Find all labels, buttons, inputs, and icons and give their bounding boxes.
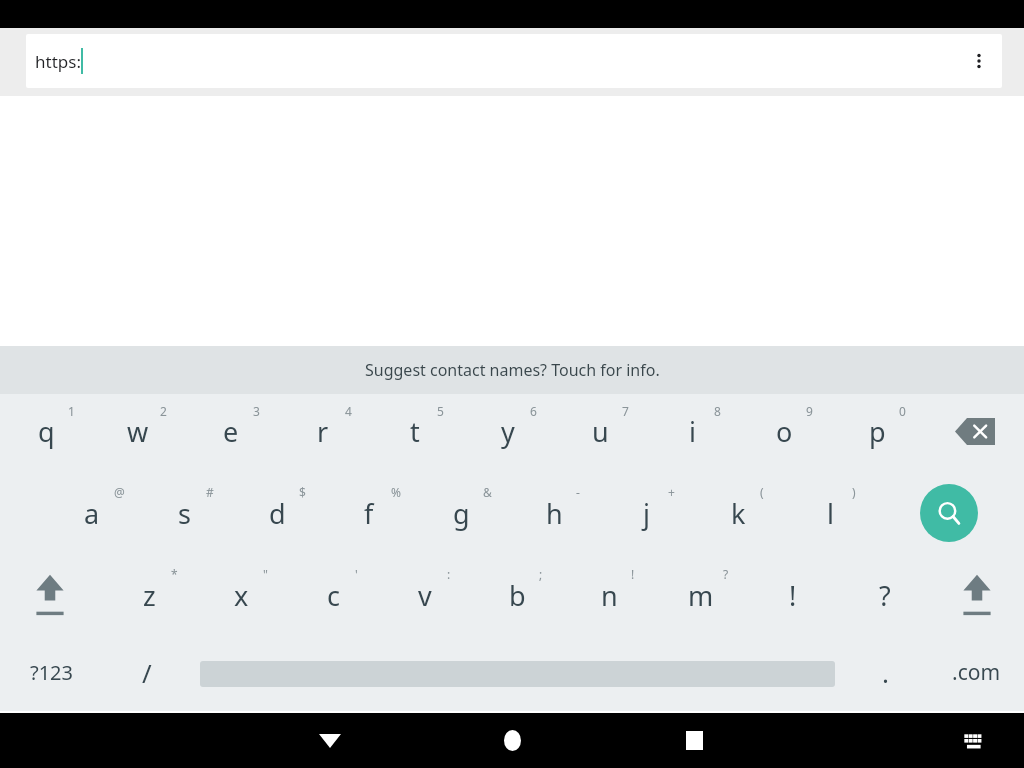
button[interactable]: w <box>92 398 184 464</box>
staticText: . <box>882 655 889 690</box>
staticText: j <box>643 495 650 532</box>
staticText: v <box>418 577 432 614</box>
staticText: z <box>143 577 156 614</box>
button[interactable]: o <box>738 398 830 464</box>
button[interactable]: z <box>103 562 195 628</box>
staticText: f <box>364 495 374 532</box>
button[interactable]: ? <box>839 562 931 628</box>
button[interactable]: / <box>110 644 184 700</box>
button[interactable]: b <box>471 562 563 628</box>
button[interactable]: Search <box>920 484 978 542</box>
button[interactable]: . <box>850 644 920 700</box>
button[interactable]: j <box>600 480 692 546</box>
staticText: Suggest contact names? Touch for info. <box>365 359 660 381</box>
staticText: a <box>84 495 100 532</box>
button[interactable]: x <box>195 562 287 628</box>
staticText: ! <box>789 577 797 614</box>
staticText: @ <box>114 484 125 500</box>
staticText: 0 <box>899 403 906 419</box>
staticText: x <box>234 577 249 614</box>
button[interactable]: r <box>277 398 369 464</box>
staticText: b <box>509 577 526 614</box>
staticText: 8 <box>714 403 721 419</box>
button[interactable]: f <box>323 480 415 546</box>
staticText: r <box>317 413 329 450</box>
staticText: 6 <box>530 403 537 419</box>
staticText: ? <box>723 566 729 582</box>
staticText: ! <box>631 566 635 582</box>
button[interactable]: ! <box>747 562 839 628</box>
staticText: 2 <box>160 403 167 419</box>
staticText: s <box>178 495 191 532</box>
button[interactable]: Shift <box>10 562 90 628</box>
staticText: e <box>223 413 239 450</box>
button[interactable]: v <box>379 562 471 628</box>
staticText: k <box>731 495 746 532</box>
button[interactable]: Shift <box>937 562 1017 628</box>
button[interactable]: d <box>231 480 323 546</box>
staticText: d <box>269 495 286 532</box>
button[interactable]: Backspace <box>935 398 1015 464</box>
staticText: https: <box>35 50 81 73</box>
staticText: u <box>592 413 609 450</box>
staticText: m <box>688 577 714 614</box>
button[interactable]: c <box>287 562 379 628</box>
staticText: 1 <box>68 403 75 419</box>
button[interactable]: a <box>46 480 138 546</box>
button[interactable]: q <box>0 398 92 464</box>
staticText: ; <box>539 566 543 582</box>
staticText: 9 <box>806 403 813 419</box>
button[interactable]: y <box>462 398 554 464</box>
button[interactable]: https: <box>26 34 1002 88</box>
staticText: p <box>869 413 886 450</box>
button[interactable]: k <box>692 480 784 546</box>
button[interactable]: Home <box>488 713 536 768</box>
staticText: # <box>206 484 214 500</box>
staticText: " <box>263 566 268 582</box>
button[interactable]: i <box>646 398 738 464</box>
button[interactable]: m <box>655 562 747 628</box>
staticText: n <box>601 577 618 614</box>
staticText: i <box>689 413 696 450</box>
staticText: + <box>668 484 675 500</box>
button[interactable]: h <box>508 480 600 546</box>
button[interactable]: Hide keyboard <box>306 713 354 768</box>
button[interactable]: Recent apps <box>670 713 718 768</box>
button[interactable]: g <box>415 480 507 546</box>
button[interactable]: n <box>563 562 655 628</box>
staticText: 7 <box>622 403 629 419</box>
button[interactable]: l <box>784 480 876 546</box>
staticText: * <box>171 566 178 582</box>
staticText: l <box>827 495 834 532</box>
staticText: t <box>410 413 420 450</box>
staticText: / <box>142 655 152 690</box>
staticText: .com <box>952 658 1001 687</box>
button[interactable]: .com <box>930 644 1022 700</box>
button[interactable]: u <box>554 398 646 464</box>
staticText: 5 <box>437 403 444 419</box>
staticText: g <box>453 495 470 532</box>
staticText: c <box>327 577 340 614</box>
button[interactable]: s <box>138 480 230 546</box>
staticText: ' <box>355 566 358 582</box>
staticText: ( <box>760 484 764 500</box>
staticText: 3 <box>253 403 260 419</box>
staticText: h <box>546 495 563 532</box>
staticText: $ <box>299 484 306 500</box>
staticText: - <box>576 484 580 500</box>
staticText: : <box>447 566 451 582</box>
button[interactable]: e <box>185 398 277 464</box>
staticText: 4 <box>345 403 352 419</box>
button[interactable]: Suggest contact names? Touch for info. <box>0 346 1024 394</box>
button[interactable]: More options <box>956 34 1002 88</box>
button[interactable]: t <box>369 398 461 464</box>
button[interactable]: p <box>831 398 923 464</box>
staticText: y <box>501 413 515 450</box>
staticText: w <box>127 413 149 450</box>
staticText: q <box>38 413 55 450</box>
staticText: o <box>776 413 793 450</box>
button[interactable]: ?123 <box>8 644 94 700</box>
button[interactable]: Switch keyboard <box>952 713 996 768</box>
staticText: % <box>391 484 401 500</box>
